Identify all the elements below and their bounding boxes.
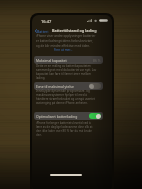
button[interactable]: Evne til maksimal ytelse xyxy=(34,82,103,90)
button[interactable]: Toggle xyxy=(89,113,101,119)
staticText: 16:47 xyxy=(41,19,52,24)
staticText: Batteri xyxy=(37,29,49,34)
staticText: Innebygde dynamiske programvare- og mask… xyxy=(36,89,97,105)
staticText: Maksimal kapasitet xyxy=(36,58,67,63)
staticText: iPhone forlenger batteriets levetid ved … xyxy=(36,121,97,137)
staticText: Dette er en måling av batterikapasiteten… xyxy=(36,64,97,80)
button[interactable]: Finn ut mer xyxy=(54,48,73,52)
staticText: 86 % xyxy=(93,58,101,62)
button[interactable]: Toggle xyxy=(89,83,101,89)
staticText: Finn ut mer… xyxy=(54,48,73,52)
button[interactable]: Back to Batteri xyxy=(34,28,50,34)
button[interactable]: Maksimal kapasitet xyxy=(34,56,103,64)
button[interactable]: Optimalisert batterilading xyxy=(34,112,103,120)
staticText: Optimalisert batterilading xyxy=(36,114,78,119)
staticText: iPhone viser andre opplysninger batterie… xyxy=(36,34,97,48)
staticText: Batteritilstand og lading xyxy=(52,28,97,33)
staticText: Evne til maksimal ytelse xyxy=(36,84,74,89)
